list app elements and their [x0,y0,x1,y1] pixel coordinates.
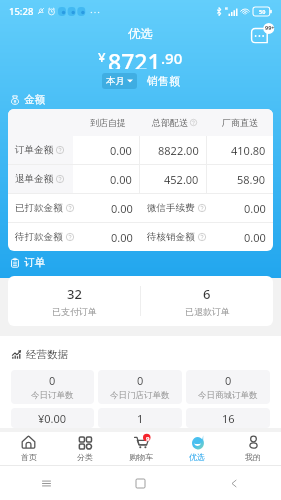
staticText: 我的 [245,452,261,462]
button[interactable]: 16 [186,408,270,428]
button[interactable]: 9 [113,432,169,465]
button[interactable]: 分类 [57,432,113,465]
staticText: 8822.00 [158,143,199,158]
staticText: 到店自提 [90,117,126,128]
button[interactable]: 0 [186,370,270,404]
button[interactable]: 1 [98,408,182,428]
staticText: 50 [259,8,266,15]
button[interactable]: ¥0.00 [11,408,94,428]
button[interactable]: 优选 [169,432,225,465]
staticText: 订单 [24,256,45,269]
staticText: 已支付订单 [52,306,97,317]
staticText: 今日订单数 [31,390,74,401]
staticText: 6 [203,285,211,303]
staticText: 经营数据 [26,348,68,361]
staticText: 0.00 [244,230,266,245]
button[interactable]: 6 [141,276,273,326]
staticText: 待核销金额 [147,231,195,243]
button[interactable]: 0 [98,370,182,404]
staticText: 0.00 [244,201,266,216]
staticText: .90 [161,48,183,68]
staticText: 待打款金额 [15,231,63,243]
staticText: 452.00 [164,172,199,187]
staticText: 58.90 [237,172,266,187]
staticText: 今日商城订单数 [198,390,258,401]
staticText: 0 [137,373,144,388]
staticText: 金额 [24,93,45,106]
staticText: ¥ [98,48,106,66]
staticText: 优选 [189,452,205,462]
staticText: 优选 [128,26,153,42]
staticText: 已打款金额 [15,202,63,214]
button[interactable]: 首页 [0,432,57,465]
staticText: ¥0.00 [38,411,67,426]
staticText: 0 [49,373,56,388]
staticText: 32 [67,285,82,303]
button[interactable]: 本月 [102,73,137,89]
button[interactable]: Messages [249,22,275,46]
staticText: 0 [225,373,232,388]
staticText: 销售额 [147,74,180,88]
staticText: 9 [146,435,150,443]
staticText: 退单金额 [15,173,53,185]
staticText: 分类 [77,452,93,462]
staticText: 99+ [265,24,275,31]
staticText: 已退款订单 [185,306,230,317]
staticText: 今日门店订单数 [110,390,170,401]
staticText: 1 [137,411,144,426]
staticText: 0.00 [110,143,132,158]
button[interactable]: 0 [11,370,94,404]
staticText: 总部配送 [152,117,188,128]
staticText: 16 [222,411,235,426]
staticText: 410.80 [231,143,266,158]
button[interactable]: 32 [8,276,140,326]
staticText: 0.00 [111,201,133,216]
staticText: 本月 [106,75,125,87]
button[interactable]: 我的 [225,432,281,465]
staticText: 0.00 [111,230,133,245]
staticText: 8721 [108,46,161,69]
staticText: 厂商直送 [222,117,258,128]
staticText: 订单金额 [15,144,53,156]
staticText: 0.00 [110,172,132,187]
staticText: 首页 [21,452,37,462]
staticText: 微信手续费 [147,202,195,214]
staticText: 15:28 [9,5,34,18]
staticText: 购物车 [129,452,153,462]
